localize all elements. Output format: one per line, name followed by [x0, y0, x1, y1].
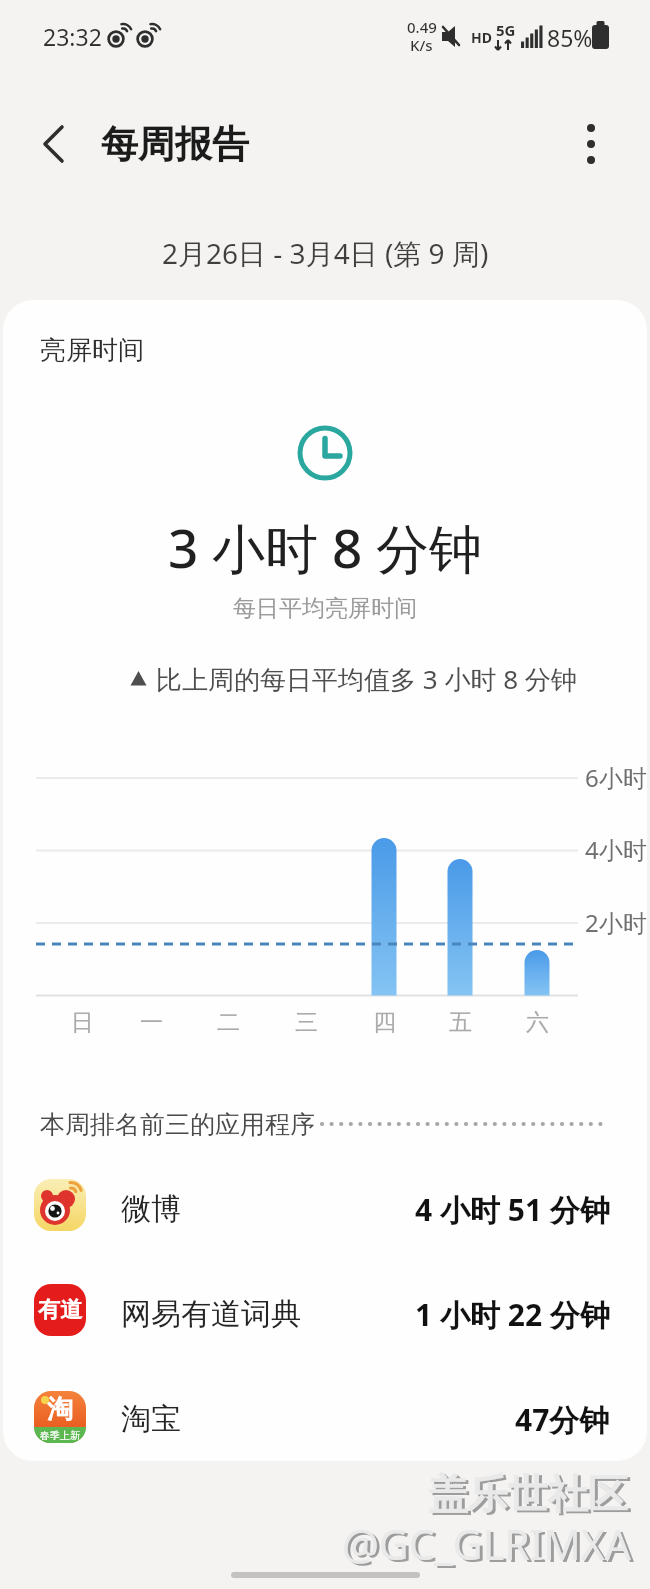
- staticText: 4小时: [585, 833, 647, 866]
- staticText: 5G: [496, 20, 516, 40]
- staticText: HD: [471, 28, 492, 47]
- staticText: 五: [449, 1008, 472, 1037]
- staticText: 盖乐世社区: [428, 1469, 628, 1519]
- staticText: 日: [71, 1008, 94, 1037]
- staticText: 85%: [547, 22, 593, 53]
- staticText: @GC_GLRIMXA: [342, 1516, 631, 1572]
- staticText: 0.49: [407, 17, 437, 37]
- staticText: 微博: [121, 1190, 181, 1228]
- staticText: @GC_GLRIMXA: [345, 1518, 634, 1574]
- staticText: 每日平均亮屏时间: [233, 594, 417, 623]
- staticText: 2小时: [585, 906, 647, 939]
- staticText: 六: [526, 1008, 549, 1037]
- staticText: 有道: [38, 1296, 82, 1324]
- button[interactable]: 网易有道词典: [31, 1272, 610, 1356]
- staticText: 2月26日 - 3月4日 (第 9 周): [162, 234, 489, 272]
- staticText: 亮屏时间: [40, 334, 144, 367]
- staticText: 网易有道词典: [121, 1295, 301, 1333]
- button[interactable]: [30, 118, 80, 170]
- staticText: 每周报告: [101, 121, 249, 168]
- staticText: K/s: [410, 35, 433, 55]
- staticText: 47分钟: [515, 1399, 610, 1440]
- staticText: 3 小时 8 分钟: [168, 511, 482, 583]
- button[interactable]: 微博: [31, 1167, 610, 1251]
- staticText: 春季上新: [40, 1429, 80, 1442]
- staticText: 4 小时 51 分钟: [415, 1189, 610, 1230]
- button[interactable]: 淘宝: [31, 1377, 610, 1461]
- button[interactable]: [567, 118, 615, 170]
- staticText: 四: [373, 1008, 396, 1037]
- staticText: 1 小时 22 分钟: [415, 1294, 610, 1335]
- staticText: 本周排名前三的应用程序: [40, 1109, 315, 1140]
- staticText: 盖乐世社区: [431, 1471, 631, 1521]
- staticText: 三: [295, 1008, 318, 1037]
- staticText: 二: [217, 1008, 240, 1037]
- staticText: 比上周的每日平均值多 3 小时 8 分钟: [156, 661, 577, 697]
- staticText: 一: [140, 1008, 163, 1037]
- staticText: 淘宝: [121, 1400, 181, 1438]
- staticText: 23:32: [43, 21, 102, 52]
- staticText: 淘: [47, 1393, 73, 1426]
- staticText: 6小时: [585, 761, 647, 794]
